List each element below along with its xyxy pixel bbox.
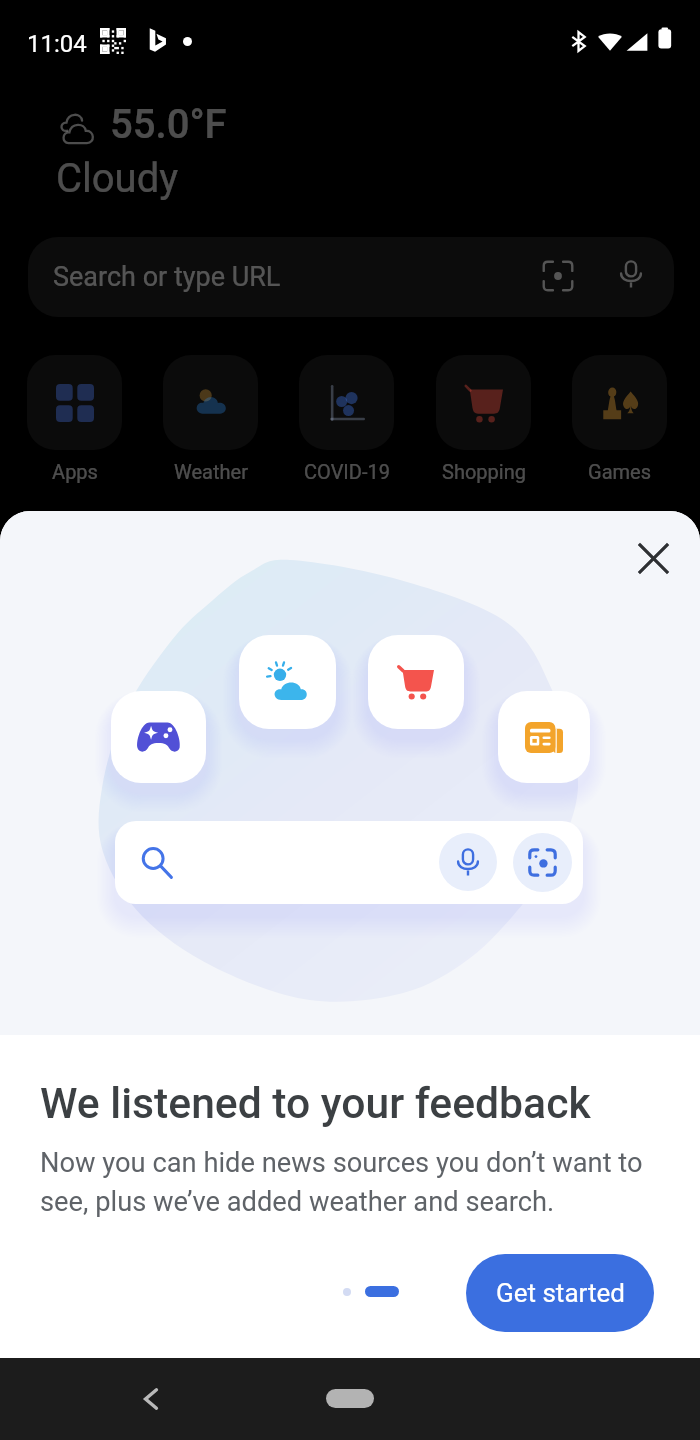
staticText: Now you can hide news sources you don’t …	[40, 1147, 655, 1218]
button[interactable]: Shopping	[436, 355, 531, 483]
button[interactable]: Voice search	[115, 821, 583, 904]
button[interactable]: Visual search	[541, 259, 575, 293]
button[interactable]: Apps	[27, 355, 122, 483]
button[interactable]: Weather	[163, 355, 258, 483]
button[interactable]	[239, 635, 336, 729]
button[interactable]: Games	[572, 355, 667, 483]
button[interactable]: Close	[627, 532, 679, 584]
staticText: COVID-19	[304, 460, 390, 483]
staticText: We listened to your feedback	[40, 1078, 591, 1128]
staticText: 55.0°F	[110, 101, 227, 148]
button[interactable]: Visual search	[513, 833, 572, 892]
staticText: Weather	[174, 460, 248, 483]
button[interactable]: Home	[326, 1389, 374, 1408]
staticText: Get started	[496, 1278, 625, 1308]
button[interactable]	[368, 635, 464, 729]
button[interactable]: Get started	[466, 1254, 654, 1332]
button[interactable]	[498, 691, 590, 783]
staticText: Cloudy	[56, 155, 179, 202]
staticText: Shopping	[442, 460, 526, 483]
button[interactable]	[111, 691, 206, 783]
button[interactable]: Back	[130, 1385, 172, 1413]
button[interactable]: Voice search	[616, 259, 646, 289]
button[interactable]: Voice search	[439, 833, 497, 891]
staticText: 11:04	[27, 30, 87, 58]
staticText: Search or type URL	[53, 261, 281, 293]
staticText: Apps	[52, 460, 98, 483]
staticText: Games	[588, 460, 651, 483]
button[interactable]: COVID-19	[299, 355, 394, 483]
button[interactable]: Search or type URL	[28, 237, 674, 317]
